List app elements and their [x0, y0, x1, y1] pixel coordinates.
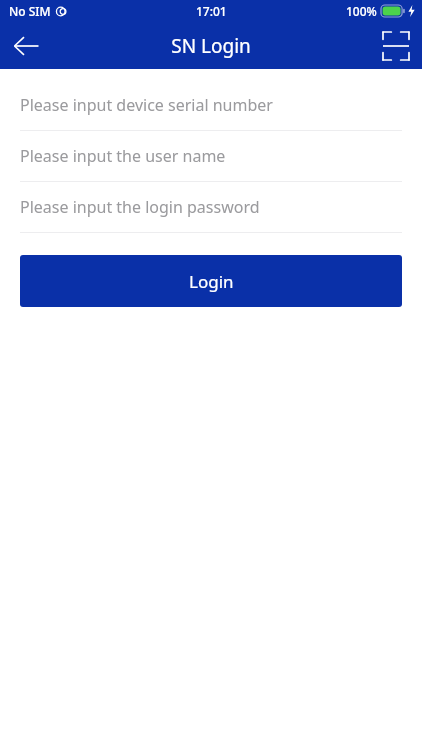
staticText: SN Login	[171, 33, 251, 59]
staticText: Please input the user name	[20, 145, 226, 167]
staticText: 100%	[346, 3, 377, 19]
staticText: Please input the login password	[20, 196, 260, 218]
button[interactable]: Please input device serial number	[0, 80, 422, 131]
staticText: 17:01	[196, 3, 227, 19]
button[interactable]: Login	[20, 255, 402, 307]
button[interactable]: Back	[0, 22, 52, 69]
staticText: Login	[189, 270, 234, 293]
button[interactable]: Please input the login password	[0, 182, 422, 233]
button[interactable]: Scan code	[370, 22, 422, 69]
staticText: Please input device serial number	[20, 94, 273, 116]
staticText: No SIM	[9, 3, 51, 19]
button[interactable]: Please input the user name	[0, 131, 422, 182]
